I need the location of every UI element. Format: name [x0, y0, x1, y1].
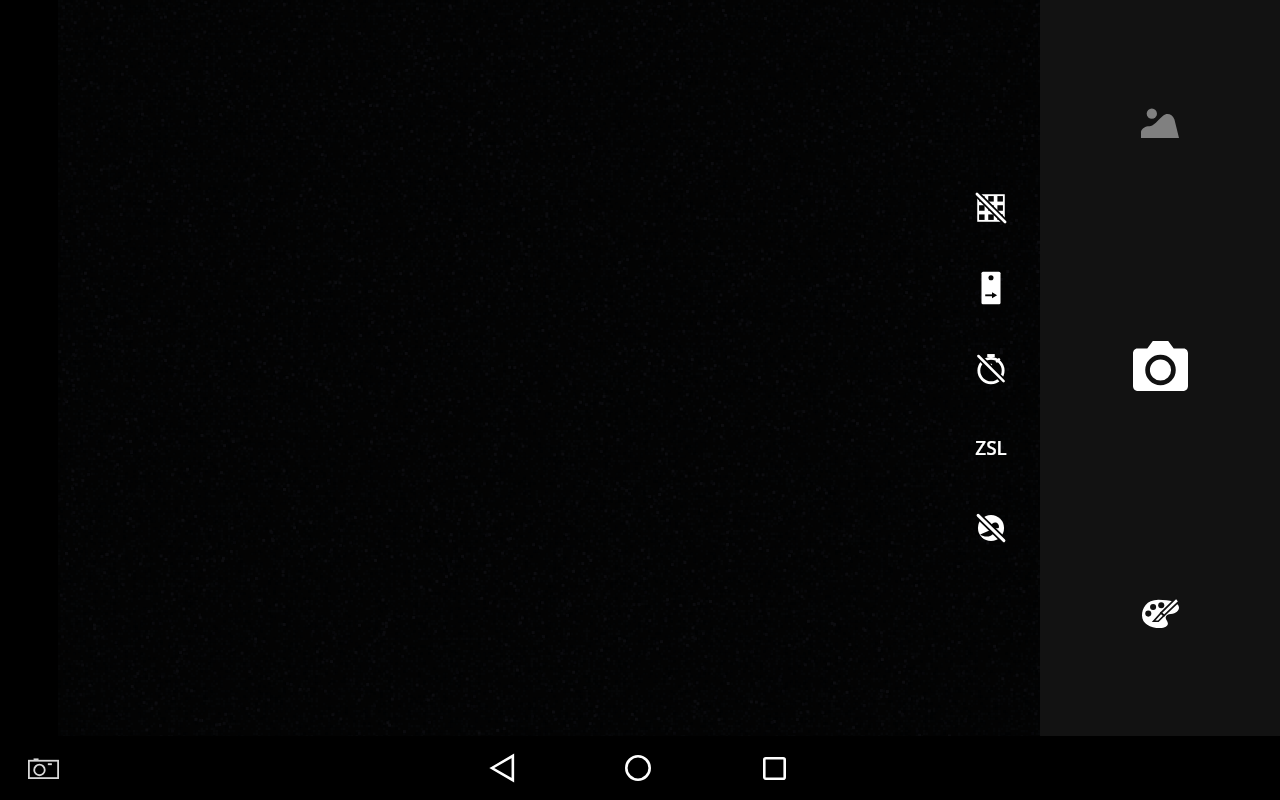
button[interactable]: Back — [478, 752, 526, 784]
staticText: ZSL — [975, 435, 1007, 461]
button[interactable]: Camera preview, tap to focus — [58, 0, 1040, 736]
button[interactable]: Home — [614, 752, 662, 784]
button[interactable]: Eco off — [951, 488, 1031, 568]
button[interactable]: Camera orientation — [951, 248, 1031, 328]
button[interactable]: ZSL — [951, 408, 1031, 488]
button[interactable]: Shutter — [1100, 306, 1220, 426]
button[interactable]: Timer off — [951, 328, 1031, 408]
button[interactable]: Grid off — [951, 168, 1031, 248]
button[interactable]: Recents — [750, 752, 798, 784]
button[interactable]: Gallery — [1100, 62, 1220, 182]
button[interactable]: Camera app — [18, 750, 68, 786]
button[interactable]: Filters — [1100, 553, 1220, 673]
